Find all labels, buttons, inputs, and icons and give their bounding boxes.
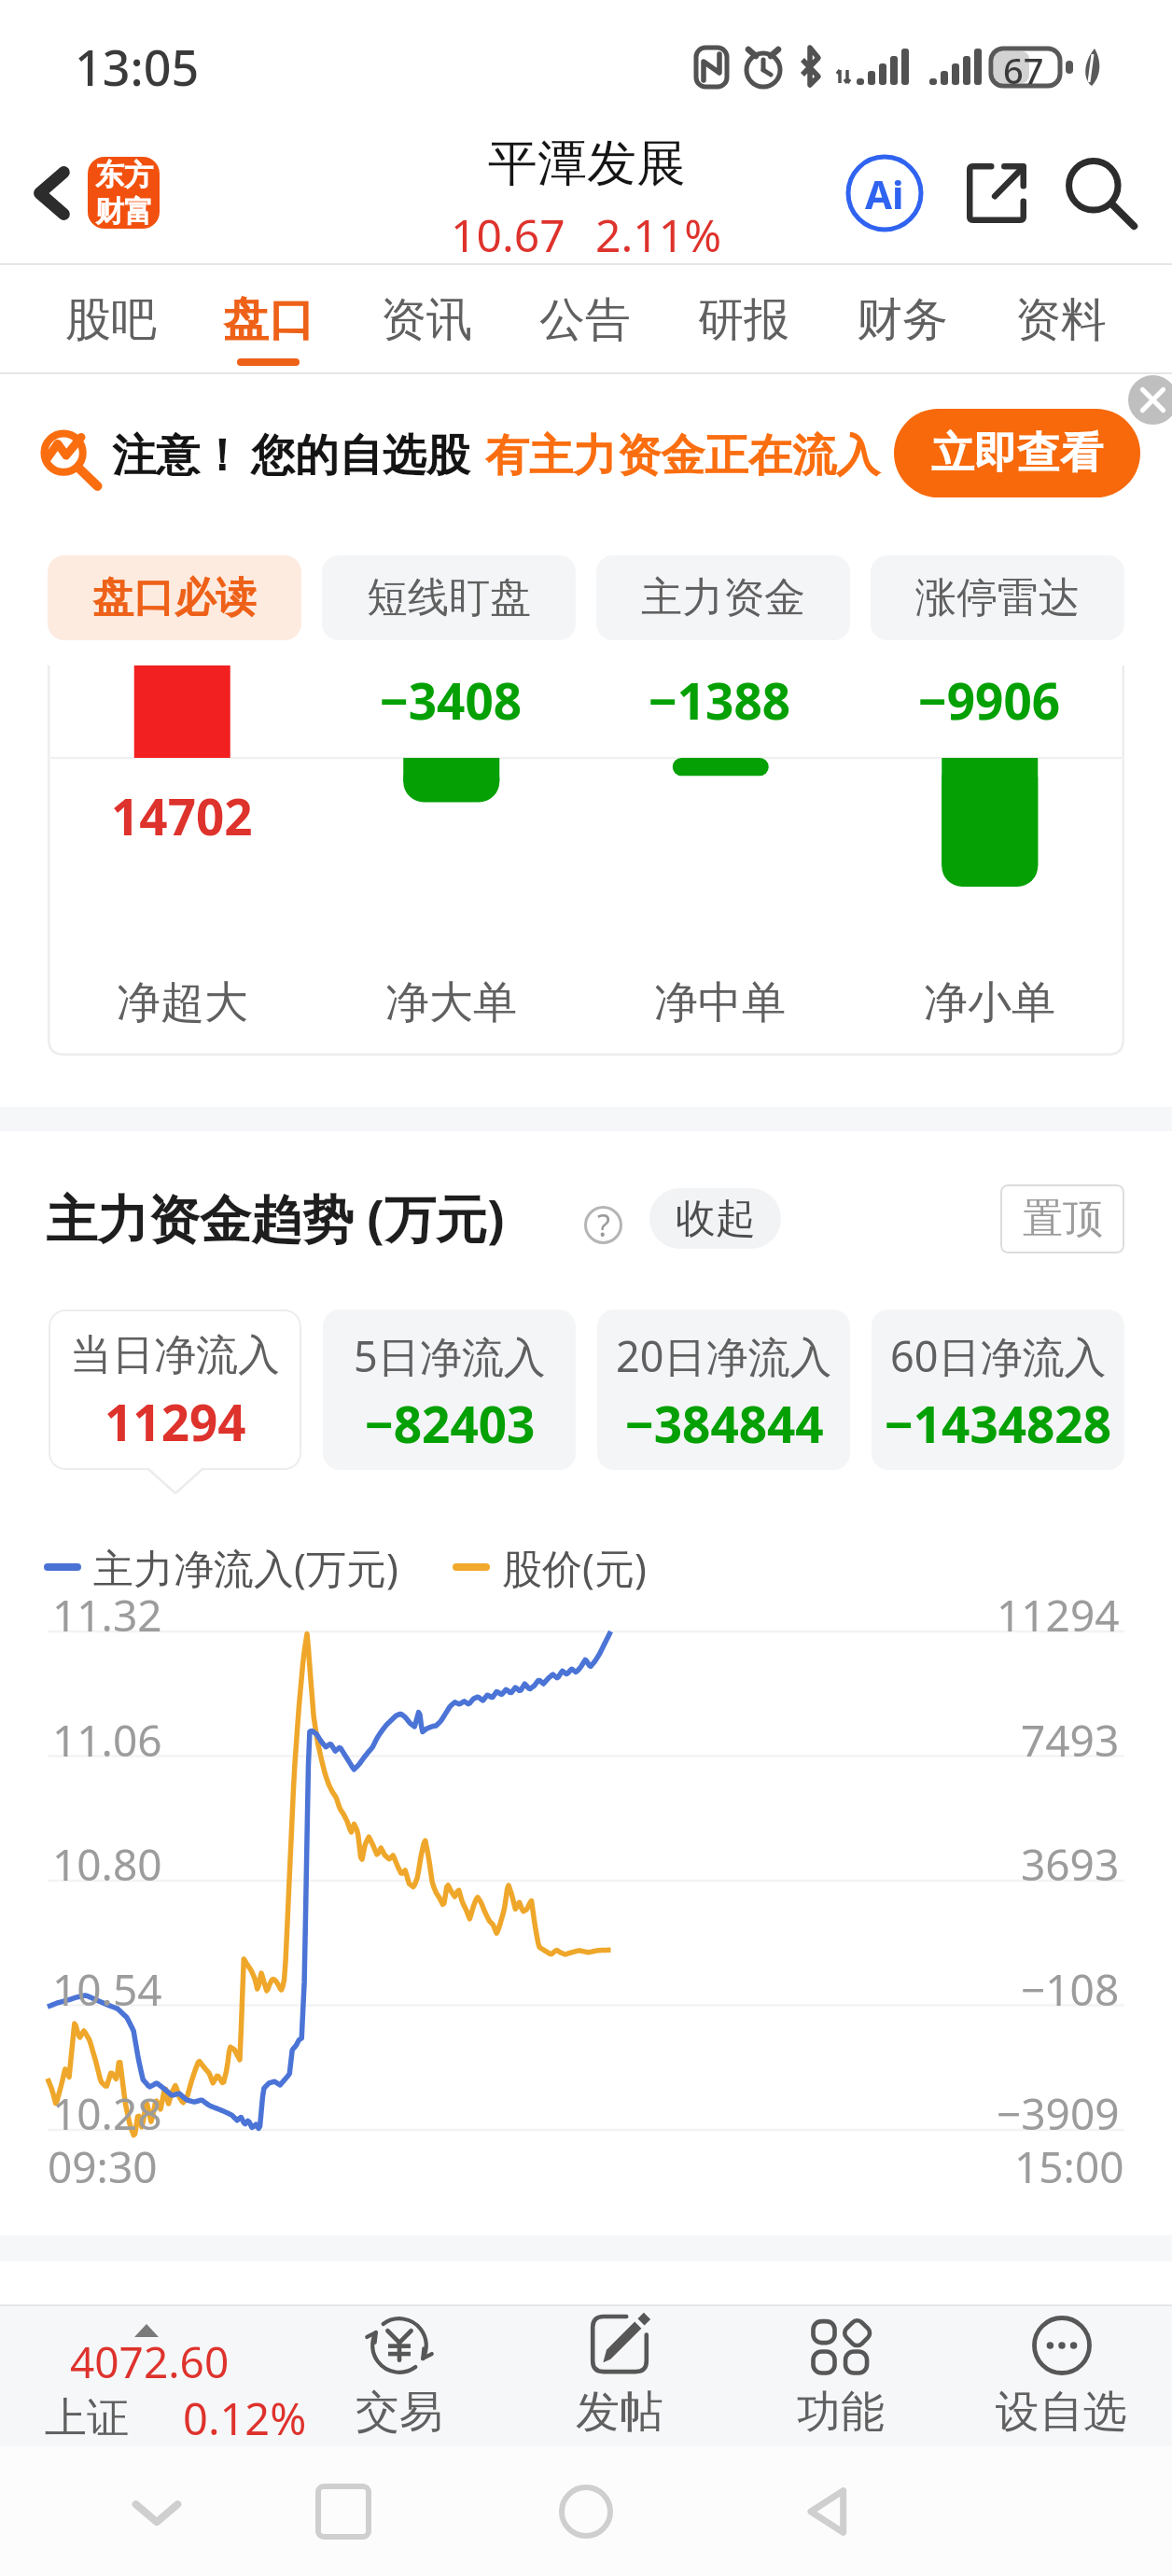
button[interactable]: 公告 (506, 265, 664, 374)
button[interactable]: East Money home (88, 157, 160, 229)
button[interactable]: 平潭发展 (390, 133, 782, 254)
button[interactable]: Back (791, 2474, 866, 2549)
button[interactable]: 14702 (48, 665, 316, 1056)
staticText: 盘口必读 (92, 572, 257, 623)
staticText: 净小单 (924, 975, 1055, 1030)
staticText: 有主力资金正在流入 (485, 428, 880, 483)
staticText: 10.54 (52, 1960, 162, 2019)
staticText: 财务 (857, 291, 948, 349)
staticText: 13:05 (75, 34, 200, 100)
staticText: 10.28 (52, 2084, 162, 2143)
staticText: 功能 (797, 2385, 885, 2440)
staticText: 15:00 (1014, 2137, 1124, 2196)
staticText: 盘口 (223, 291, 314, 349)
staticText: −3909 (997, 2084, 1120, 2143)
staticText: 5日净流入 (354, 1327, 546, 1384)
staticText: 您的自选股 (251, 428, 470, 483)
button[interactable]: 主力资金 (596, 555, 850, 640)
staticText: 10.67 (451, 204, 565, 254)
button[interactable]: 资料 (982, 265, 1140, 374)
staticText: 11294 (997, 1586, 1120, 1645)
staticText: 11.32 (52, 1586, 162, 1645)
staticText: −108 (1021, 1960, 1120, 2019)
button[interactable]: 发帖 (509, 2304, 730, 2446)
staticText: 公告 (539, 291, 631, 349)
button[interactable]: Help (579, 1200, 628, 1250)
staticText: 短线盯盘 (367, 572, 531, 623)
button[interactable]: 研报 (664, 265, 823, 374)
staticText: 7493 (1021, 1711, 1120, 1770)
staticText: 67 (1003, 46, 1044, 94)
button[interactable]: Home (549, 2474, 623, 2549)
staticText: 发帖 (576, 2385, 663, 2440)
button[interactable]: 资讯 (347, 265, 506, 374)
button[interactable]: Recents (306, 2474, 381, 2549)
button[interactable]: 设自选 (951, 2304, 1172, 2446)
staticText: −1388 (649, 666, 791, 734)
button[interactable]: 功能 (730, 2304, 951, 2446)
staticText: 净大单 (385, 975, 517, 1030)
staticText: 立即查看 (931, 427, 1103, 481)
staticText: 主力净流入(万元) (93, 1540, 398, 1595)
button[interactable]: 短线盯盘 (322, 555, 576, 640)
staticText: 3693 (1021, 1835, 1120, 1894)
staticText: −3408 (380, 666, 523, 734)
staticText: −1434828 (885, 1390, 1112, 1457)
staticText: 20日净流入 (616, 1327, 832, 1384)
staticText: 主力资金 (641, 572, 805, 623)
staticText: Ai (865, 167, 904, 220)
staticText: 东方 (95, 157, 153, 193)
button[interactable]: 股吧 (32, 265, 189, 374)
button[interactable]: 置顶 (1000, 1184, 1124, 1253)
staticText: 上证 (45, 2392, 129, 2445)
button[interactable]: Back (7, 121, 97, 265)
button[interactable]: Search (1054, 147, 1148, 240)
staticText: 设自选 (996, 2385, 1127, 2440)
staticText: 4072.60 (70, 2332, 230, 2391)
staticText: 10.80 (52, 1835, 162, 1894)
button[interactable]: 财务 (823, 265, 982, 374)
staticText: ? (597, 1205, 610, 1246)
button[interactable]: Hide keyboard (119, 2474, 194, 2549)
button[interactable]: −9906 (855, 665, 1124, 1056)
button[interactable]: 4072.60 (0, 2304, 291, 2446)
staticText: 收起 (676, 1194, 756, 1244)
staticText: 研报 (698, 291, 789, 349)
button[interactable]: 主力资金趋势 (万元) (46, 1183, 505, 1253)
button[interactable]: −3408 (316, 665, 585, 1056)
button[interactable]: 20日净流入 (597, 1309, 850, 1470)
staticText: 交易 (356, 2385, 443, 2440)
staticText: 股吧 (65, 291, 157, 349)
staticText: 60日净流入 (890, 1327, 1107, 1384)
staticText: 股价(元) (502, 1540, 647, 1595)
button[interactable]: 涨停雷达 (871, 555, 1124, 640)
button[interactable]: 交易 (289, 2304, 509, 2446)
staticText: 置顶 (1023, 1194, 1103, 1244)
button[interactable]: Close ad (1128, 375, 1172, 425)
button[interactable]: 盘口必读 (48, 555, 301, 640)
button[interactable]: 注意！ (35, 412, 880, 499)
staticText: −82403 (365, 1390, 536, 1457)
button[interactable]: 5日净流入 (323, 1309, 576, 1470)
staticText: 0.12% (183, 2388, 307, 2448)
button[interactable]: 当日净流入 (49, 1309, 301, 1470)
button[interactable]: −1388 (585, 665, 855, 1056)
button[interactable]: 盘口 (189, 265, 347, 374)
staticText: 2.11% (595, 204, 722, 254)
staticText: 资讯 (381, 291, 472, 349)
staticText: 当日净流入 (70, 1329, 280, 1382)
staticText: 平潭发展 (488, 133, 686, 195)
staticText: 09:30 (48, 2137, 158, 2196)
staticText: 注意！ (112, 428, 244, 483)
staticText: 11.06 (52, 1711, 162, 1770)
button[interactable]: 立即查看 (894, 409, 1140, 497)
button[interactable]: 收起 (649, 1188, 781, 1249)
button[interactable]: Share (950, 147, 1043, 240)
staticText: 涨停雷达 (915, 572, 1080, 623)
staticText: −9906 (918, 666, 1061, 734)
button[interactable]: 60日净流入 (872, 1309, 1124, 1470)
staticText: −384844 (625, 1390, 824, 1457)
staticText: 财富 (95, 193, 153, 229)
button[interactable]: AI assistant (838, 147, 931, 240)
staticText: 11294 (105, 1388, 246, 1455)
